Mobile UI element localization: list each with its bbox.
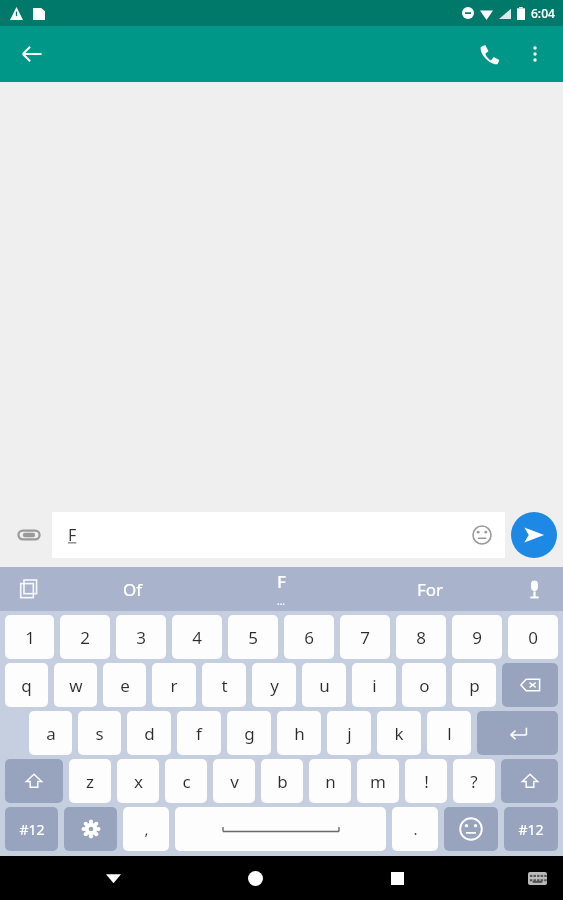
button[interactable]: g bbox=[227, 711, 271, 755]
staticText: #12 bbox=[518, 820, 544, 839]
staticText: e bbox=[120, 674, 130, 697]
button[interactable]: ! bbox=[405, 759, 447, 803]
button[interactable]: 3 bbox=[116, 615, 166, 659]
staticText: 3 bbox=[136, 626, 146, 649]
button[interactable]: 1 bbox=[5, 615, 54, 659]
button[interactable]: 0 bbox=[508, 615, 558, 659]
button[interactable]: Emoji bbox=[467, 520, 497, 550]
button[interactable]: r bbox=[152, 663, 196, 707]
button[interactable]: 5 bbox=[228, 615, 278, 659]
button[interactable]: More options bbox=[513, 32, 557, 76]
button[interactable]: l bbox=[427, 711, 471, 755]
button[interactable]: Send bbox=[511, 512, 557, 558]
staticText: c bbox=[182, 770, 191, 793]
button[interactable]: 4 bbox=[172, 615, 222, 659]
staticText: #12 bbox=[19, 820, 45, 839]
button[interactable]: Call bbox=[465, 30, 513, 78]
button[interactable]: h bbox=[277, 711, 321, 755]
button[interactable]: F bbox=[207, 567, 356, 611]
button[interactable]: ? bbox=[453, 759, 495, 803]
button[interactable]: 7 bbox=[340, 615, 390, 659]
button[interactable]: Attach bbox=[6, 512, 52, 558]
button[interactable]: 9 bbox=[452, 615, 502, 659]
staticText: m bbox=[370, 770, 386, 793]
staticText: t bbox=[221, 674, 228, 697]
staticText: n bbox=[325, 770, 336, 793]
staticText: . bbox=[413, 819, 418, 839]
button[interactable]: Clipboard bbox=[0, 567, 58, 611]
button[interactable]: k bbox=[377, 711, 421, 755]
staticText: 9 bbox=[472, 626, 482, 649]
staticText: z bbox=[86, 770, 94, 793]
button[interactable]: 8 bbox=[396, 615, 446, 659]
button[interactable]: s bbox=[78, 711, 121, 755]
button[interactable]: Voice input bbox=[505, 567, 563, 611]
button[interactable]: Hide keyboard bbox=[91, 856, 135, 900]
staticText: d bbox=[144, 722, 155, 745]
button[interactable]: n bbox=[309, 759, 351, 803]
button[interactable]: , bbox=[123, 807, 169, 851]
staticText: 6:04 bbox=[531, 5, 555, 21]
button[interactable]: e bbox=[103, 663, 146, 707]
button[interactable]: Backspace bbox=[502, 663, 558, 707]
button[interactable]: Settings bbox=[64, 807, 117, 851]
button[interactable]: Emoji bbox=[444, 807, 498, 851]
button[interactable]: v bbox=[213, 759, 255, 803]
staticText: 1 bbox=[25, 626, 35, 649]
button[interactable]: F bbox=[52, 512, 505, 558]
button[interactable]: Shift bbox=[501, 759, 558, 803]
button[interactable]: q bbox=[5, 663, 48, 707]
button[interactable]: 6 bbox=[284, 615, 334, 659]
staticText: a bbox=[46, 722, 56, 745]
button[interactable]: y bbox=[252, 663, 296, 707]
staticText: 0 bbox=[528, 626, 538, 649]
button[interactable]: Keyboard layout bbox=[517, 858, 557, 898]
button[interactable]: z bbox=[69, 759, 111, 803]
staticText: q bbox=[21, 674, 32, 697]
staticText: v bbox=[230, 770, 239, 793]
button[interactable]: For bbox=[356, 567, 505, 611]
staticText: F bbox=[277, 570, 286, 593]
button[interactable]: x bbox=[117, 759, 159, 803]
button[interactable]: Of bbox=[58, 567, 207, 611]
button[interactable]: t bbox=[202, 663, 246, 707]
button[interactable]: b bbox=[261, 759, 303, 803]
button[interactable]: 2 bbox=[60, 615, 110, 659]
button[interactable]: a bbox=[29, 711, 72, 755]
button[interactable]: i bbox=[352, 663, 396, 707]
staticText: For bbox=[417, 578, 444, 601]
staticText: f bbox=[196, 722, 202, 745]
button[interactable]: p bbox=[452, 663, 496, 707]
staticText: x bbox=[134, 770, 143, 793]
staticText: F bbox=[68, 524, 77, 546]
staticText: g bbox=[244, 722, 255, 745]
staticText: 6 bbox=[304, 626, 314, 649]
staticText: r bbox=[170, 674, 178, 697]
button[interactable]: Home bbox=[233, 856, 277, 900]
button[interactable]: Space bbox=[175, 807, 386, 851]
button[interactable]: m bbox=[357, 759, 399, 803]
button[interactable]: Back bbox=[8, 30, 56, 78]
staticText: k bbox=[394, 722, 404, 745]
button[interactable]: c bbox=[165, 759, 207, 803]
button[interactable]: #12 bbox=[504, 807, 558, 851]
staticText: s bbox=[95, 722, 104, 745]
staticText: 4 bbox=[192, 626, 202, 649]
staticText: y bbox=[270, 674, 279, 697]
staticText: j bbox=[347, 722, 352, 745]
button[interactable]: u bbox=[302, 663, 346, 707]
button[interactable]: w bbox=[54, 663, 97, 707]
button[interactable]: Recents bbox=[375, 856, 419, 900]
button[interactable]: Shift bbox=[5, 759, 63, 803]
staticText: o bbox=[419, 674, 430, 697]
staticText: ... bbox=[277, 594, 286, 608]
staticText: h bbox=[294, 722, 305, 745]
staticText: Of bbox=[123, 578, 143, 601]
button[interactable]: . bbox=[392, 807, 438, 851]
button[interactable]: Enter bbox=[477, 711, 558, 755]
button[interactable]: d bbox=[127, 711, 171, 755]
button[interactable]: #12 bbox=[5, 807, 58, 851]
button[interactable]: f bbox=[177, 711, 221, 755]
button[interactable]: o bbox=[402, 663, 446, 707]
button[interactable]: j bbox=[327, 711, 371, 755]
